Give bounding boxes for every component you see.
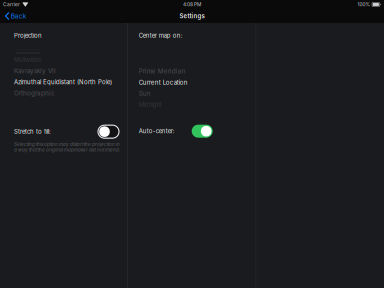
staticText: Center map on: — [139, 32, 183, 39]
button[interactable]: Kavrayskiy VII — [14, 65, 127, 76]
staticText: Mollweide — [14, 56, 41, 63]
button[interactable]: Azimuthal Equidistant (North Pole) — [14, 76, 127, 88]
staticText: Azimuthal Equidistant (North Pole) — [14, 78, 112, 86]
button[interactable]: Auto-center — [192, 125, 213, 138]
staticText: Midnight — [139, 101, 162, 108]
staticText: Auto-center: — [139, 127, 175, 135]
staticText: Back — [11, 12, 27, 20]
staticText: Settings — [179, 12, 204, 20]
staticText: Selecting this option may distort the pr… — [14, 142, 120, 153]
staticText: Sun — [139, 90, 151, 97]
button[interactable]: Stretch to fill — [98, 125, 119, 138]
staticText: Prime Meridian — [139, 67, 186, 75]
staticText: Current Location — [139, 79, 188, 86]
button[interactable]: Prime Meridian — [139, 66, 256, 77]
button[interactable]: Mollweide — [14, 54, 127, 65]
button[interactable]: Orthographic — [14, 88, 127, 99]
staticText: 4:08 PM — [183, 2, 201, 7]
button[interactable]: Back — [0, 10, 32, 22]
staticText: 100% — [358, 2, 371, 7]
button[interactable]: Current Location — [139, 77, 256, 88]
button[interactable]: Sun — [139, 88, 256, 99]
staticText: Carrier — [3, 2, 20, 7]
staticText: Stretch to fill: — [14, 128, 51, 135]
staticText: Kavrayskiy VII — [14, 67, 56, 75]
staticText: Projection — [14, 32, 42, 39]
staticText: Orthographic — [14, 89, 55, 97]
